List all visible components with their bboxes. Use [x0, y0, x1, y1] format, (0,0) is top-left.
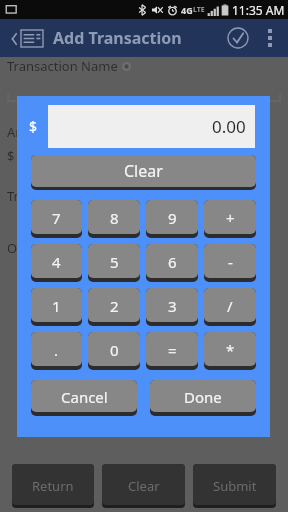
staticText: *: [226, 340, 235, 360]
button[interactable]: Confirm: [219, 19, 257, 57]
staticText: =: [168, 340, 177, 360]
staticText: Transaction Name: [7, 57, 118, 75]
button[interactable]: 3: [146, 288, 198, 326]
button[interactable]: 8: [88, 200, 140, 238]
staticText: $: [29, 117, 38, 136]
button[interactable]: /: [204, 288, 256, 326]
button[interactable]: 4: [31, 244, 82, 282]
button[interactable]: 7: [31, 200, 82, 238]
staticText: Return: [32, 477, 74, 495]
button[interactable]: .: [31, 332, 82, 370]
staticText: 9: [168, 208, 177, 228]
staticText: /: [227, 296, 233, 316]
staticText: +: [226, 208, 235, 228]
staticText: Clear: [124, 160, 163, 182]
button[interactable]: Cancel: [31, 380, 137, 416]
button[interactable]: -: [204, 244, 256, 282]
staticText: 6: [168, 252, 177, 272]
staticText: 7: [52, 208, 61, 228]
button[interactable]: Clear: [102, 464, 185, 508]
staticText: $: [7, 147, 15, 165]
staticText: 8: [110, 208, 119, 228]
staticText: Transaction Type: [7, 187, 111, 205]
staticText: 4G: [181, 4, 193, 16]
button[interactable]: 6: [146, 244, 198, 282]
button[interactable]: Clear: [31, 155, 256, 190]
staticText: Clear: [128, 477, 160, 495]
staticText: 11:35 AM: [232, 2, 285, 18]
button[interactable]: 0.00: [48, 105, 255, 148]
button[interactable]: 5: [88, 244, 140, 282]
button[interactable]: More options: [257, 19, 283, 57]
button[interactable]: Navigate up: [5, 19, 49, 57]
staticText: LTE: [193, 5, 205, 15]
button[interactable]: 1: [31, 288, 82, 326]
staticText: -: [228, 252, 233, 272]
staticText: 1: [52, 296, 61, 316]
staticText: 0.00: [212, 115, 246, 138]
button[interactable]: +: [204, 200, 256, 238]
button[interactable]: =: [146, 332, 198, 370]
button[interactable]: 9: [146, 200, 198, 238]
staticText: 4: [52, 252, 61, 272]
staticText: Other: [7, 239, 43, 257]
button[interactable]: *: [204, 332, 256, 370]
staticText: 0: [110, 340, 119, 360]
button[interactable]: Return: [12, 464, 94, 508]
staticText: Amount: [7, 123, 57, 141]
staticText: Done: [184, 387, 222, 407]
staticText: 3: [168, 296, 177, 316]
button[interactable]: Done: [150, 380, 256, 416]
button[interactable]: 2: [88, 288, 140, 326]
staticText: 2: [110, 296, 119, 316]
staticText: .: [54, 340, 59, 360]
staticText: Add Transaction: [53, 27, 182, 49]
staticText: Submit: [213, 477, 257, 495]
button[interactable]: Submit: [193, 464, 276, 508]
staticText: 5: [110, 252, 119, 272]
button[interactable]: 0: [88, 332, 140, 370]
staticText: Cancel: [61, 387, 108, 407]
